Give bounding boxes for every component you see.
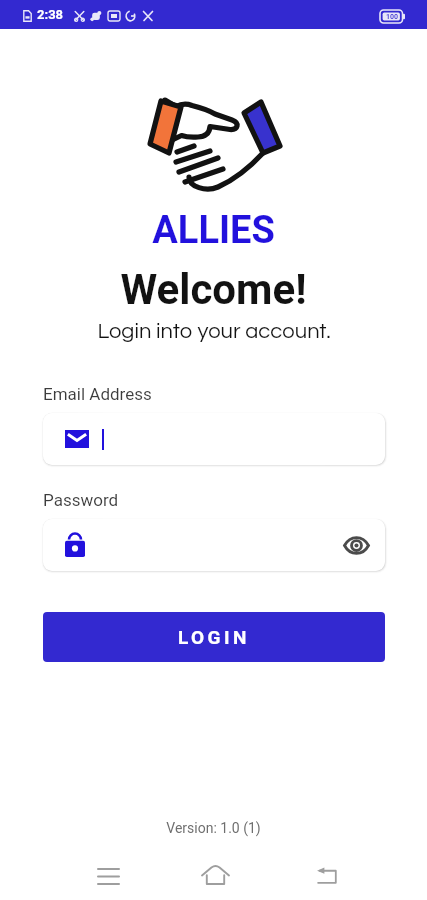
staticText: Login into your account.	[97, 320, 331, 343]
button[interactable]: Show password	[339, 528, 373, 562]
other: Email	[65, 430, 89, 448]
button[interactable]: Recent apps	[83, 853, 133, 897]
staticText: LOGIN	[178, 626, 250, 648]
button[interactable]: Email	[43, 413, 385, 465]
staticText: 100	[386, 13, 399, 21]
staticText: Password	[43, 490, 119, 510]
button[interactable]: Password	[43, 519, 385, 571]
other: Password	[65, 532, 85, 558]
staticText: ALLIES	[152, 208, 275, 253]
button[interactable]: Home	[190, 853, 240, 897]
staticText: Version: 1.0 (1)	[166, 820, 261, 836]
staticText: 2:38	[37, 7, 64, 22]
button[interactable]: Back	[301, 853, 351, 897]
staticText: Welcome!	[120, 265, 307, 314]
staticText: Email Address	[43, 384, 152, 404]
button[interactable]: LOGIN	[43, 612, 385, 662]
